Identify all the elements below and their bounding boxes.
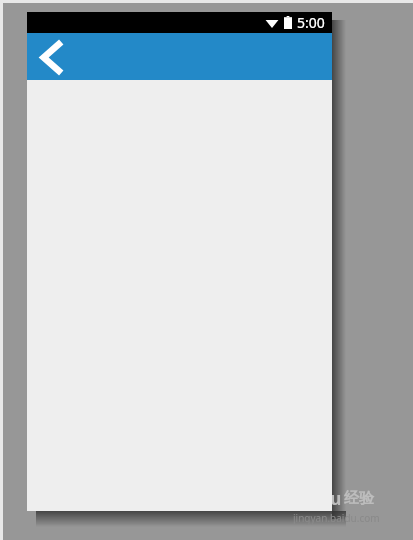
staticText: jingyan.baidu.com: [293, 511, 380, 525]
staticText: 5:00: [297, 13, 325, 32]
staticText: Baidu: [293, 487, 342, 510]
button[interactable]: Back: [30, 35, 74, 79]
staticText: 经验: [344, 489, 374, 508]
